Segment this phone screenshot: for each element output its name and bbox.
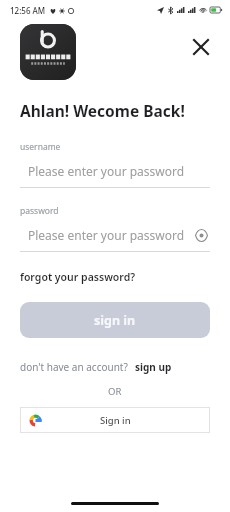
button[interactable]: Please enter your password — [20, 224, 210, 246]
button[interactable]: Close — [186, 32, 216, 62]
staticText: username — [20, 141, 61, 153]
button[interactable]: Show password — [192, 226, 210, 244]
button[interactable]: Albahrani logo — [20, 24, 76, 80]
staticText: Please enter your password — [28, 227, 185, 243]
staticText: Sign in — [100, 414, 131, 427]
button[interactable]: sign up — [135, 360, 172, 374]
button[interactable]: Sign in — [20, 407, 210, 433]
staticText: sign up — [135, 360, 172, 374]
staticText: sign in — [94, 312, 136, 329]
staticText: don't have an account? — [20, 360, 128, 374]
staticText: OR — [108, 385, 122, 398]
button[interactable]: Please enter your password — [20, 160, 210, 182]
button[interactable]: forgot your password? — [20, 270, 136, 284]
staticText: forgot your password? — [20, 270, 136, 284]
staticText: 12:56 AM — [10, 5, 46, 16]
staticText: Please enter your password — [28, 163, 185, 179]
staticText: Ahlan! Wecome Back! — [20, 100, 185, 121]
staticText: password — [20, 205, 59, 217]
button[interactable]: sign in — [20, 302, 210, 338]
